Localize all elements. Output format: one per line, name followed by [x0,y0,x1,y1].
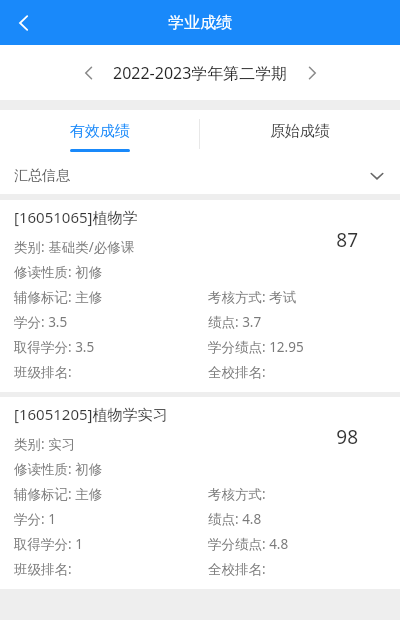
staticText: 辅修标记: 主修 [14,485,103,503]
button[interactable]: Previous semester [69,53,109,93]
staticText: 考核方式: [208,485,266,503]
staticText: 修读性质: 初修 [14,460,103,478]
staticText: 取得学分: 1 [14,535,83,553]
staticText: 修读性质: 初修 [14,263,103,281]
staticText: 汇总信息 [14,167,70,185]
staticText: 全校排名: [208,363,266,381]
button[interactable]: 汇总信息 [0,158,400,194]
button[interactable]: [16051205]植物学实习 [0,397,400,589]
staticText: 2022-2023学年第二学期 [113,62,288,84]
staticText: 类别: 基础类/必修课 [14,238,135,256]
staticText: 原始成绩 [270,122,330,141]
staticText: 考核方式: 考试 [208,288,297,306]
staticText: 98 [336,424,358,450]
staticText: [16051065]植物学 [14,207,138,227]
staticText: [16051205]植物学实习 [14,404,168,424]
staticText: 班级排名: [14,363,72,381]
staticText: 87 [336,227,358,253]
staticText: 绩点: 4.8 [208,510,262,528]
staticText: 辅修标记: 主修 [14,288,103,306]
staticText: 全校排名: [208,560,266,578]
staticText: 学分绩点: 4.8 [208,535,289,553]
staticText: 绩点: 3.7 [208,313,262,331]
staticText: 类别: 实习 [14,435,76,453]
staticText: 学分绩点: 12.95 [208,338,304,356]
staticText: 学分: 1 [14,510,56,528]
button[interactable]: Next semester [292,53,332,93]
button[interactable]: [16051065]植物学 [0,200,400,392]
staticText: 取得学分: 3.5 [14,338,95,356]
staticText: 有效成绩 [70,122,130,141]
staticText: 班级排名: [14,560,72,578]
button[interactable]: 原始成绩 [200,110,400,158]
button[interactable]: Back [0,0,48,45]
staticText: 学分: 3.5 [14,313,68,331]
staticText: 学业成绩 [168,13,232,33]
button[interactable]: 有效成绩 [0,110,200,158]
